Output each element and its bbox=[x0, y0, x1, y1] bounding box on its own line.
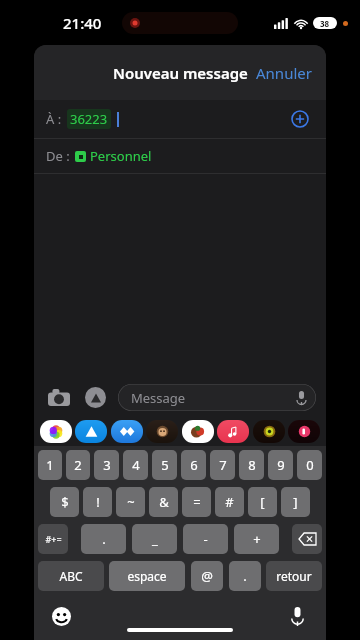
staticText: 7 bbox=[219, 456, 227, 474]
staticText: = bbox=[193, 493, 201, 511]
button[interactable]: App 4 bbox=[182, 420, 214, 443]
button[interactable]: App 2 bbox=[111, 420, 143, 443]
staticText: Message bbox=[131, 389, 186, 407]
button[interactable]: Apps bbox=[80, 382, 110, 412]
button[interactable]: Ajouter un contact bbox=[286, 105, 314, 133]
button[interactable]: App 7 bbox=[288, 420, 320, 443]
button[interactable]: Appareil photo bbox=[44, 382, 74, 412]
button[interactable]: 2 bbox=[66, 450, 90, 480]
staticText: ] bbox=[293, 493, 298, 511]
staticText: [ bbox=[260, 493, 265, 511]
staticText: À : bbox=[46, 110, 62, 128]
button[interactable]: ] bbox=[281, 487, 310, 517]
staticText: De : bbox=[46, 147, 70, 165]
staticText: . bbox=[243, 567, 247, 585]
staticText: 3 bbox=[103, 456, 111, 474]
staticText: 6 bbox=[190, 456, 198, 474]
button[interactable]: @ bbox=[191, 561, 223, 591]
staticText: ABC bbox=[59, 568, 83, 584]
staticText: Nouveau message bbox=[113, 63, 248, 83]
staticText: retour bbox=[276, 568, 312, 584]
button[interactable]: ! bbox=[83, 487, 112, 517]
button[interactable]: App 5 bbox=[217, 420, 249, 443]
button[interactable]: Emoji bbox=[48, 603, 74, 629]
button[interactable]: 7 bbox=[210, 450, 235, 480]
staticText: espace bbox=[127, 568, 167, 584]
button[interactable]: [ bbox=[248, 487, 277, 517]
button[interactable]: 8 bbox=[239, 450, 264, 480]
button[interactable]: . bbox=[81, 524, 126, 554]
button[interactable]: . bbox=[229, 561, 261, 591]
button[interactable]: _ bbox=[132, 524, 177, 554]
button[interactable]: App 1 bbox=[75, 420, 107, 443]
staticText: 5 bbox=[161, 456, 169, 474]
button[interactable]: Dictée bbox=[284, 603, 310, 629]
staticText: #+= bbox=[45, 533, 62, 545]
staticText: - bbox=[203, 530, 208, 548]
button[interactable]: ABC bbox=[38, 561, 104, 591]
button[interactable]: - bbox=[183, 524, 228, 554]
button[interactable]: retour bbox=[266, 561, 322, 591]
staticText: + bbox=[253, 530, 261, 548]
staticText: 9 bbox=[277, 456, 285, 474]
button[interactable]: 5 bbox=[152, 450, 177, 480]
button[interactable]: 4 bbox=[123, 450, 148, 480]
staticText: # bbox=[225, 493, 234, 511]
button[interactable]: App 0 bbox=[40, 420, 72, 443]
staticText: Annuler bbox=[256, 63, 312, 83]
staticText: 4 bbox=[132, 456, 140, 474]
staticText: Personnel bbox=[90, 147, 152, 165]
staticText: ! bbox=[96, 493, 100, 511]
button[interactable]: Supprimer bbox=[292, 524, 322, 554]
staticText: 1 bbox=[46, 456, 54, 474]
button[interactable]: 0 bbox=[297, 450, 322, 480]
staticText: & bbox=[159, 493, 169, 511]
button[interactable]: 36223 bbox=[67, 109, 111, 129]
staticText: $ bbox=[61, 493, 69, 511]
staticText: ~ bbox=[127, 493, 135, 511]
button[interactable]: App 6 bbox=[253, 420, 285, 443]
button[interactable]: & bbox=[149, 487, 178, 517]
button[interactable]: 9 bbox=[268, 450, 293, 480]
button[interactable]: = bbox=[182, 487, 211, 517]
staticText: _ bbox=[152, 530, 158, 548]
staticText: 8 bbox=[248, 456, 256, 474]
button[interactable]: Annuler bbox=[242, 55, 326, 91]
staticText: 0 bbox=[306, 456, 314, 474]
button[interactable]: espace bbox=[109, 561, 185, 591]
staticText: 21:40 bbox=[63, 13, 102, 33]
button[interactable]: 6 bbox=[181, 450, 206, 480]
button[interactable]: #+= bbox=[38, 524, 68, 554]
button[interactable]: ~ bbox=[116, 487, 145, 517]
staticText: 38 bbox=[320, 18, 330, 29]
button[interactable]: + bbox=[234, 524, 279, 554]
button[interactable]: App 3 bbox=[146, 420, 178, 443]
staticText: . bbox=[102, 530, 106, 548]
button[interactable]: 1 bbox=[38, 450, 62, 480]
staticText: 36223 bbox=[70, 110, 108, 128]
button[interactable]: Message bbox=[118, 384, 316, 411]
staticText: 2 bbox=[74, 456, 82, 474]
staticText: @ bbox=[201, 567, 213, 585]
button[interactable]: $ bbox=[50, 487, 79, 517]
button[interactable]: 3 bbox=[94, 450, 119, 480]
button[interactable]: # bbox=[215, 487, 244, 517]
